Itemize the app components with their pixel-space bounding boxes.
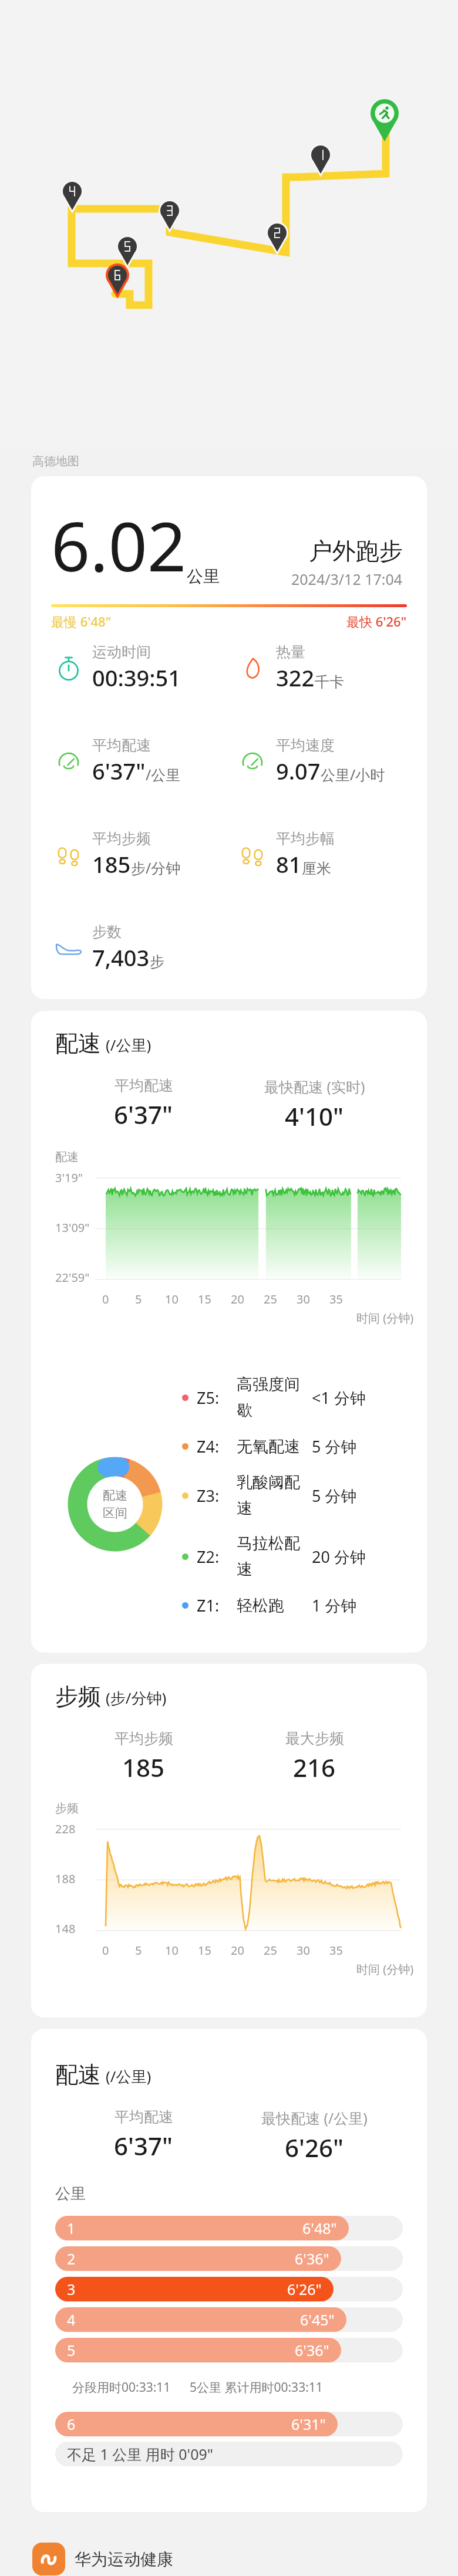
staticText: 步频: [55, 1801, 79, 1816]
staticText: 平均配速: [114, 1077, 173, 1095]
staticText: Z1:: [197, 1595, 237, 1616]
staticText: 平均步频: [114, 1729, 173, 1748]
staticText: 厘米: [302, 859, 331, 878]
staticText: 9.07: [276, 756, 321, 786]
staticText: 步/分钟: [131, 858, 181, 878]
staticText: 00:39:51: [92, 662, 181, 693]
staticText: 配速: [55, 1029, 101, 1058]
staticText: 3'19": [55, 1170, 83, 1186]
staticText: 平均配速: [92, 736, 151, 754]
staticText: (步/分钟): [106, 1687, 167, 1708]
staticText: 148: [55, 1921, 76, 1937]
staticText: 千卡: [315, 673, 344, 691]
staticText: 6'31": [291, 2414, 326, 2434]
staticText: Z3:: [197, 1485, 237, 1507]
staticText: 公里: [187, 566, 220, 587]
staticText: 30: [297, 1942, 310, 1958]
staticText: 5 分钟: [312, 1485, 357, 1507]
staticText: 6'36": [295, 2340, 329, 2360]
staticText: 最快配速 (/公里): [261, 2108, 368, 2128]
staticText: 10: [165, 1291, 179, 1307]
staticText: 30: [297, 1291, 310, 1307]
staticText: 5: [135, 1942, 142, 1958]
staticText: 配速: [55, 1150, 79, 1165]
staticText: 马拉松配速: [237, 1534, 307, 1579]
staticText: 20: [231, 1942, 244, 1958]
staticText: 3: [67, 2279, 76, 2299]
staticText: 185: [92, 849, 131, 879]
staticText: 时间 (分钟): [356, 1310, 414, 1326]
staticText: 6'48": [302, 2218, 337, 2238]
staticText: 6'37": [92, 756, 146, 786]
staticText: 0: [102, 1291, 109, 1307]
staticText: 6'36": [295, 2249, 329, 2269]
staticText: (/公里): [106, 2066, 151, 2087]
staticText: 最大步频: [285, 1729, 344, 1748]
staticText: 5公里 累计用时00:33:11: [190, 2379, 323, 2396]
staticText: 华为运动健康: [75, 2549, 173, 2570]
staticText: 步频: [55, 1682, 101, 1711]
staticText: 配速: [55, 2060, 101, 2089]
staticText: 7,403: [92, 942, 150, 973]
staticText: 步: [150, 953, 164, 971]
staticText: 6: [67, 2414, 76, 2434]
staticText: 区间: [103, 1505, 127, 1521]
staticText: 步数: [92, 923, 122, 941]
staticText: 公里: [55, 2184, 86, 2203]
staticText: 不足 1 公里 用时 0'09": [67, 2444, 214, 2464]
staticText: 188: [55, 1871, 76, 1887]
staticText: 185: [122, 1751, 165, 1784]
staticText: (/公里): [106, 1034, 151, 1055]
staticText: 5 分钟: [312, 1436, 357, 1457]
staticText: Z2:: [197, 1546, 237, 1568]
staticText: 6'26": [287, 2279, 322, 2299]
staticText: 13'09": [55, 1220, 90, 1235]
staticText: 轻松跑: [237, 1596, 307, 1616]
staticText: Z4:: [197, 1436, 237, 1457]
staticText: 最快 6'26": [346, 612, 407, 630]
staticText: 25: [264, 1942, 277, 1958]
staticText: 高强度间歇: [237, 1375, 307, 1420]
staticText: 15: [198, 1291, 211, 1307]
staticText: 1: [67, 2218, 76, 2238]
staticText: 户外跑步: [309, 536, 403, 566]
staticText: 最慢 6'48": [51, 612, 112, 630]
staticText: 最快配速 (实时): [264, 1077, 365, 1096]
staticText: 228: [55, 1821, 76, 1837]
staticText: 15: [198, 1942, 211, 1958]
staticText: 6'37": [114, 1098, 173, 1131]
staticText: 平均步频: [92, 830, 151, 848]
staticText: 5: [67, 2340, 76, 2360]
staticText: 5: [135, 1291, 142, 1307]
staticText: 热量: [276, 643, 305, 661]
staticText: 25: [264, 1291, 277, 1307]
staticText: 1 分钟: [312, 1595, 357, 1616]
staticText: /公里: [146, 764, 181, 784]
staticText: 35: [329, 1291, 343, 1307]
staticText: 81: [276, 849, 302, 879]
staticText: 22'59": [55, 1270, 90, 1285]
staticText: 运动时间: [92, 643, 151, 661]
staticText: 216: [293, 1751, 336, 1784]
staticText: 无氧配速: [237, 1437, 307, 1457]
staticText: 时间 (分钟): [356, 1961, 414, 1977]
staticText: 0: [102, 1942, 109, 1958]
staticText: 10: [165, 1942, 179, 1958]
staticText: 322: [276, 662, 315, 693]
staticText: 6'37": [114, 2129, 173, 2162]
staticText: 2024/3/12 17:04: [291, 569, 403, 589]
staticText: 6'26": [285, 2131, 344, 2164]
staticText: 分段用时00:33:11: [72, 2379, 171, 2396]
staticText: 6'45": [300, 2310, 335, 2330]
staticText: 公里/小时: [321, 764, 385, 784]
staticText: 35: [329, 1942, 343, 1958]
staticText: 4: [67, 2310, 76, 2330]
staticText: <1 分钟: [312, 1387, 366, 1409]
staticText: 2: [67, 2249, 76, 2269]
staticText: 高德地图: [32, 454, 79, 469]
staticText: 配速: [103, 1488, 127, 1503]
staticText: 20 分钟: [312, 1546, 366, 1568]
staticText: 4'10": [285, 1099, 344, 1133]
staticText: 平均配速: [114, 2108, 173, 2126]
staticText: 平均步幅: [276, 830, 335, 848]
